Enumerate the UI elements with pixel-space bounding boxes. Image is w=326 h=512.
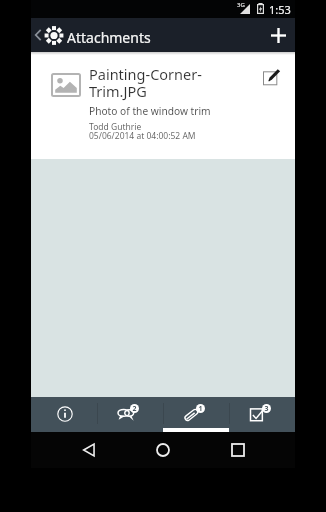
staticText: 1:53 <box>269 2 291 17</box>
button[interactable]: Attachments <box>163 397 229 432</box>
button[interactable]: Back <box>72 433 106 467</box>
button[interactable]: Comments <box>97 397 163 432</box>
staticText: Todd Guthrie <box>89 121 142 133</box>
staticText: 1 <box>198 404 203 413</box>
staticText: Painting-Corner-Trim.JPG <box>89 64 209 101</box>
button[interactable]: Add <box>261 18 295 52</box>
staticText: 2 <box>132 404 137 413</box>
staticText: 3 <box>264 404 269 413</box>
button[interactable]: Tasks <box>229 397 295 432</box>
button[interactable]: Recents <box>221 433 255 467</box>
staticText: 3G <box>237 1 245 9</box>
button[interactable]: Navigate up <box>31 18 65 52</box>
button[interactable]: Painting-Corner-Trim.JPG <box>31 52 295 159</box>
button[interactable]: Info <box>31 397 97 432</box>
staticText: 05/06/2014 at 04:00:52 AM <box>89 130 196 142</box>
button[interactable]: Home <box>146 433 180 467</box>
staticText: Attachments <box>67 28 151 47</box>
staticText: Photo of the window trim <box>89 104 211 118</box>
button[interactable]: Edit <box>254 58 290 94</box>
